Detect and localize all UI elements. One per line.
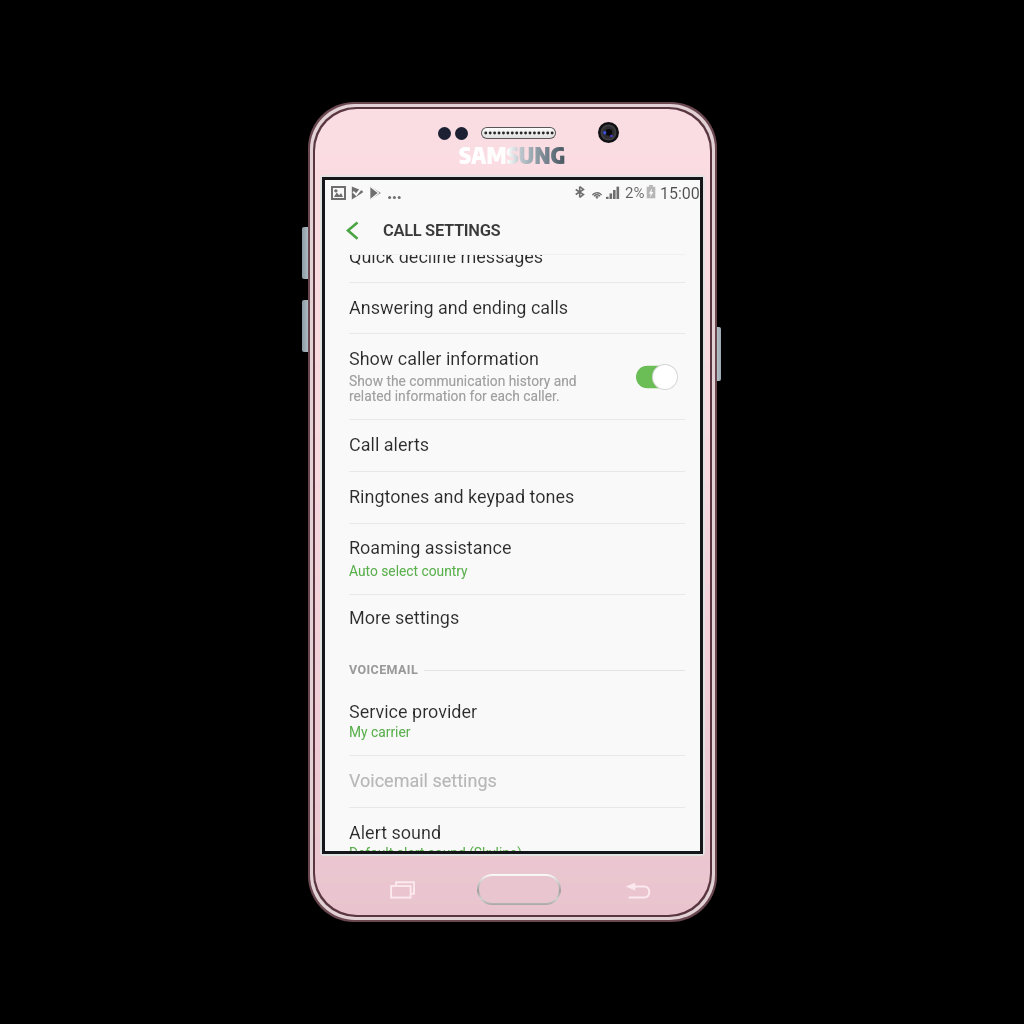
button[interactable]: Navigate up — [339, 208, 371, 252]
staticText: VOICEMAIL — [349, 662, 419, 677]
staticText: Show the communication history and relat… — [349, 373, 577, 404]
staticText: Show caller information — [349, 348, 539, 369]
staticText: Auto select country — [349, 563, 468, 579]
staticText: Roaming assistance — [349, 537, 512, 558]
staticText: 15:00 — [660, 184, 700, 203]
staticText: Voicemail settings — [349, 770, 497, 791]
staticText: 2% — [625, 184, 645, 202]
button[interactable]: Back — [622, 878, 654, 902]
staticText: More settings — [349, 607, 460, 628]
staticText: Quick decline messages — [349, 255, 544, 267]
staticText: CALL SETTINGS — [383, 221, 501, 240]
staticText: Call alerts — [349, 434, 430, 455]
staticText: Default alert sound (Skyline) — [349, 845, 522, 851]
staticText: Alert sound — [349, 822, 442, 843]
staticText: Answering and ending calls — [349, 297, 569, 318]
button[interactable]: Home — [479, 876, 559, 903]
button[interactable]: Recent apps — [387, 878, 419, 902]
staticText: My carrier — [349, 724, 411, 740]
staticText: Service provider — [349, 701, 478, 722]
staticText: SAMSUNG — [459, 140, 566, 169]
button[interactable]: Show caller information toggle — [632, 359, 682, 395]
staticText: Ringtones and keypad tones — [349, 486, 575, 507]
